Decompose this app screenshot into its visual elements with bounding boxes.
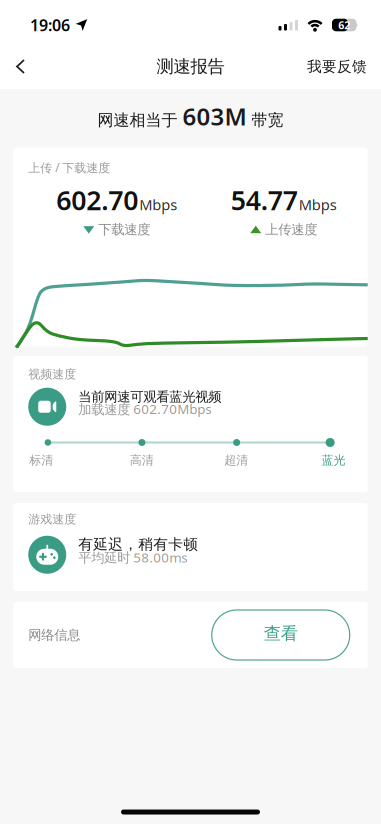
button[interactable]: 返回 <box>0 47 25 86</box>
staticText: 有延迟，稍有卡顿 <box>78 535 198 553</box>
staticText: 标清 <box>29 453 53 468</box>
staticText: 当前网速可观看 <box>78 389 169 405</box>
staticText: 上传速度 <box>265 221 317 238</box>
staticText: 网络信息 <box>28 627 80 643</box>
button[interactable]: 我要反馈 <box>307 45 381 87</box>
staticText: 加载速度 602.70Mbps <box>78 400 211 418</box>
staticText: 游戏速度 <box>28 512 76 527</box>
staticText: 带宽 <box>251 110 283 130</box>
staticText: 视频速度 <box>28 367 76 382</box>
staticText: 测速报告 <box>156 56 224 77</box>
staticText: 我要反馈 <box>307 57 367 75</box>
staticText: 蓝光视频 <box>169 389 221 405</box>
staticText: 超清 <box>224 453 248 468</box>
staticText: 网速相当于 <box>97 110 177 130</box>
staticText: 54.77 <box>231 182 298 217</box>
staticText: 平均延时 58.00ms <box>78 548 187 566</box>
staticText: 602.70 <box>56 182 138 217</box>
staticText: Mbps <box>299 195 337 214</box>
button[interactable]: 查看 <box>212 610 350 660</box>
staticText: 下载速度 <box>98 221 150 238</box>
staticText: Mbps <box>139 195 177 214</box>
staticText: 高清 <box>130 453 154 468</box>
staticText: 19:06 <box>30 14 70 36</box>
staticText: 查看 <box>264 623 298 644</box>
staticText: 蓝光 <box>321 453 345 468</box>
staticText: 603M <box>182 100 246 132</box>
staticText: 62 <box>338 18 350 32</box>
staticText: 上传 / 下载速度 <box>28 159 110 175</box>
